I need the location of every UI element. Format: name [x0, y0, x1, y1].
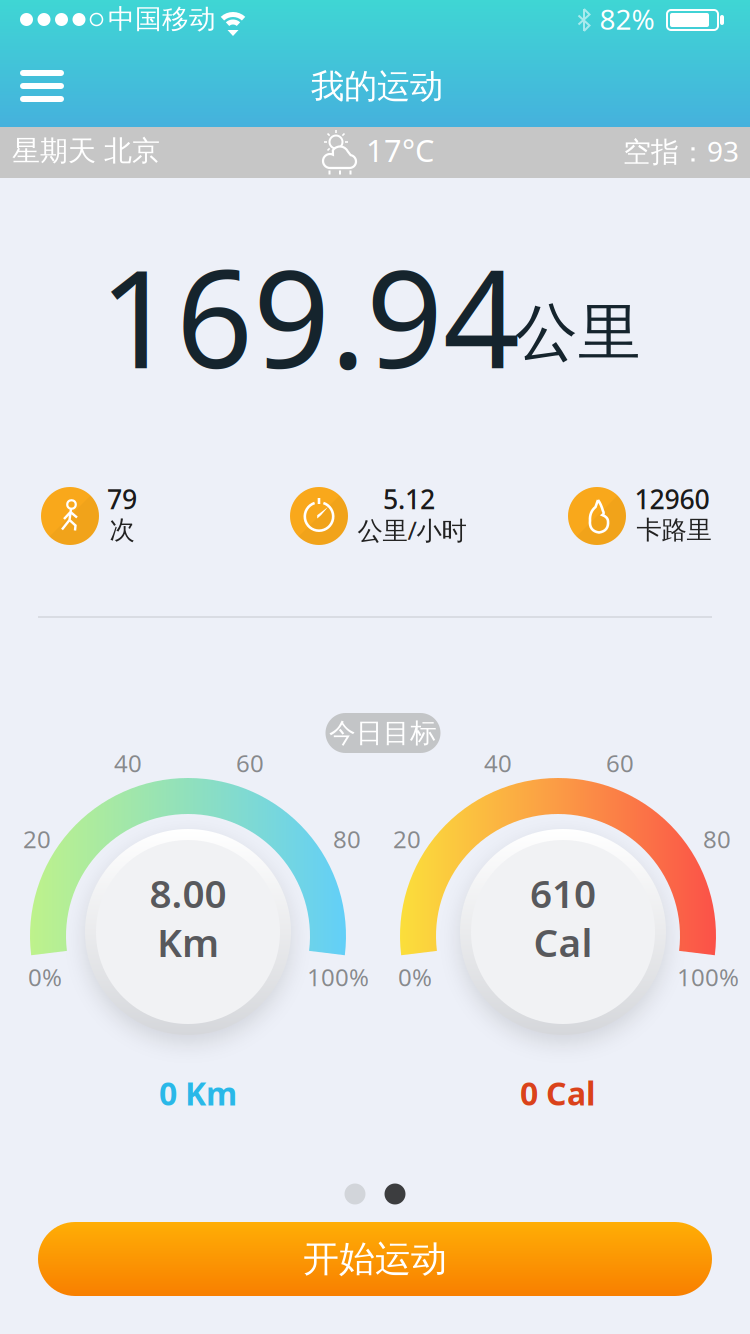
staticText: Cal — [533, 916, 592, 968]
staticText: 20 — [23, 823, 51, 855]
staticText: 次 — [109, 514, 134, 545]
button[interactable]: Menu — [10, 60, 74, 112]
button[interactable]: Page 2 — [384, 1183, 405, 1204]
staticText: 中国移动 — [108, 3, 216, 35]
staticText: 12960 — [634, 481, 709, 517]
staticText: 0 Km — [159, 1072, 237, 1114]
staticText: 5.12 — [383, 481, 435, 517]
staticText: Km — [157, 916, 219, 968]
button[interactable]: Page 1 — [344, 1183, 365, 1204]
staticText: 80 — [333, 823, 361, 855]
button[interactable]: 开始运动 — [38, 1222, 712, 1296]
staticText: 20 — [393, 823, 421, 855]
staticText: 开始运动 — [303, 1237, 447, 1281]
staticText: 卡路里 — [636, 514, 711, 545]
staticText: 79 — [107, 481, 137, 517]
staticText: 169.94 — [99, 227, 520, 405]
staticText: 公里 — [515, 294, 641, 371]
staticText: 100% — [677, 961, 739, 993]
staticText: 0% — [398, 961, 432, 993]
staticText: 8.00 — [149, 867, 226, 919]
staticText: 60 — [236, 747, 264, 779]
staticText: 40 — [114, 747, 142, 779]
staticText: 610 — [530, 867, 596, 919]
staticText: 17°C — [366, 130, 434, 170]
staticText: 星期天 北京 — [12, 134, 160, 168]
staticText: 80 — [703, 823, 731, 855]
staticText: 今日目标 — [329, 717, 437, 749]
staticText: 空指：93 — [623, 132, 739, 170]
staticText: 60 — [606, 747, 634, 779]
staticText: 我的运动 — [311, 66, 443, 107]
staticText: 0 Cal — [520, 1072, 596, 1114]
staticText: 40 — [484, 747, 512, 779]
staticText: 0% — [28, 961, 62, 993]
staticText: 100% — [307, 961, 369, 993]
staticText: 公里/小时 — [357, 513, 466, 547]
staticText: 82% — [599, 0, 654, 38]
